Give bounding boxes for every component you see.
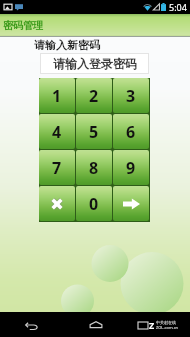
staticText: 8 <box>89 157 99 179</box>
button[interactable]: 5 <box>76 114 112 149</box>
staticText: 9 <box>126 157 136 179</box>
button[interactable]: 4 <box>39 114 75 149</box>
button[interactable]: 0 <box>76 186 112 221</box>
button[interactable]: 密码管理 <box>0 14 190 37</box>
button[interactable]: 9 <box>113 150 149 185</box>
button[interactable]: Back <box>0 312 64 337</box>
staticText: 5 <box>89 121 99 143</box>
staticText: 6 <box>126 121 136 143</box>
staticText: 7 <box>52 157 62 179</box>
staticText: ZOL.com.cn <box>156 325 179 330</box>
button[interactable]: Home <box>64 312 127 337</box>
button[interactable]: Clear <box>39 186 75 221</box>
staticText: 密码管理 <box>3 19 43 32</box>
staticText: 4 <box>52 121 62 143</box>
staticText: 5:04 <box>169 1 187 13</box>
button[interactable]: Recents <box>127 312 190 337</box>
staticText: 中关村在线 <box>156 320 176 325</box>
button[interactable]: 1 <box>39 78 75 113</box>
staticText: 请输入新密码 <box>34 38 100 52</box>
staticText: 1 <box>52 85 62 107</box>
button[interactable]: 7 <box>39 150 75 185</box>
button[interactable]: 3 <box>113 78 149 113</box>
button[interactable]: 2 <box>76 78 112 113</box>
staticText: Z <box>149 319 155 331</box>
button[interactable]: 8 <box>76 150 112 185</box>
button[interactable]: 请输入登录密码 <box>41 54 148 73</box>
staticText: 2 <box>89 85 99 107</box>
button[interactable]: Confirm <box>113 186 149 221</box>
staticText: 0 <box>89 193 99 215</box>
staticText: 请输入登录密码 <box>53 56 137 71</box>
staticText: 3 <box>126 85 136 107</box>
button[interactable]: 6 <box>113 114 149 149</box>
